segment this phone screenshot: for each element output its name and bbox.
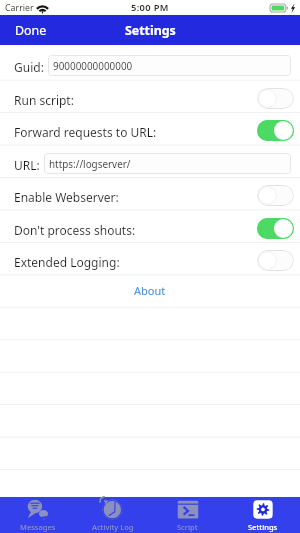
staticText: Don't process shouts: [14,222,136,238]
staticText: Enable Webserver: [14,189,119,205]
button[interactable]: Toggle on [257,120,294,141]
staticText: https://logserver/ [49,157,131,170]
button[interactable]: Activity Log [75,497,150,533]
button[interactable]: Run script: [0,80,300,112]
button[interactable]: Forward requests to URL: [0,112,300,144]
button[interactable]: Messages [0,497,75,533]
staticText: Script [177,522,198,532]
button[interactable]: Toggle off [257,88,294,109]
button[interactable]: Don't process shouts: [0,210,300,242]
button[interactable]: Toggle off [257,250,294,271]
staticText: Extended Logging: [14,254,120,270]
button[interactable]: About [0,274,300,306]
staticText: Done [15,22,47,39]
staticText: About [134,283,166,298]
staticText: Forward requests to URL: [14,124,157,140]
staticText: Settings [125,22,176,39]
button[interactable]: Enable Webserver: [0,177,300,209]
staticText: 5:00 PM [131,1,169,14]
staticText: Run script: [14,92,74,108]
staticText: Activity Log [92,522,134,532]
button[interactable]: Done [0,15,62,45]
button[interactable]: Guid: [0,47,300,79]
button[interactable]: Extended Logging: [0,242,300,274]
button[interactable]: Toggle off [257,185,294,206]
staticText: Settings [248,522,278,532]
staticText: 90000000000000 [53,59,133,72]
staticText: URL: [14,157,40,173]
button[interactable]: https://logserver/ [49,153,286,174]
button[interactable]: 90000000000000 [53,55,286,76]
button[interactable]: Script [150,497,225,533]
button[interactable]: Settings [225,497,300,533]
staticText: Carrier [5,2,34,14]
staticText: Guid: [14,59,44,75]
staticText: Messages [20,522,56,532]
button[interactable]: Toggle on [257,218,294,239]
button[interactable]: URL: [0,145,300,177]
